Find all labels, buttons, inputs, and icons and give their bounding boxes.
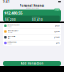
staticText: Personal Finance	[19, 4, 44, 7]
staticText: Income	[5, 16, 10, 18]
staticText: +4.2%	[55, 9, 59, 11]
staticText: $12,480.55	[4, 10, 22, 16]
button[interactable]: Coffee Shop	[3, 40, 61, 46]
button[interactable]: Monthly Salary	[3, 29, 61, 34]
staticText: -$86.20	[55, 25, 60, 27]
button[interactable]: Grocery Store	[3, 23, 61, 28]
staticText: Utilities	[8, 37, 11, 39]
staticText: Expenses	[32, 16, 40, 18]
staticText: Monthly Salary	[8, 30, 19, 31]
button[interactable]: Add Transaction	[3, 61, 61, 66]
staticText: +$3,100	[54, 31, 60, 32]
button[interactable]: Electric Bill	[3, 34, 61, 40]
staticText: Food	[8, 26, 12, 28]
staticText: Food	[8, 43, 12, 45]
staticText: Total Balance	[4, 8, 13, 10]
staticText: Income	[8, 31, 13, 33]
staticText: Add Transaction	[20, 62, 43, 65]
staticText: Grocery Store	[8, 24, 20, 26]
staticText: -$5.75	[56, 42, 60, 44]
staticText: Electric Bill	[8, 35, 15, 37]
staticText: $6,200	[5, 18, 16, 22]
staticText: October Overview	[25, 7, 38, 9]
staticText: Coffee Shop	[8, 41, 17, 43]
staticText: 9:41	[3, 0, 10, 3]
staticText: $3,410	[32, 18, 43, 22]
staticText: -$124.00	[54, 36, 60, 38]
